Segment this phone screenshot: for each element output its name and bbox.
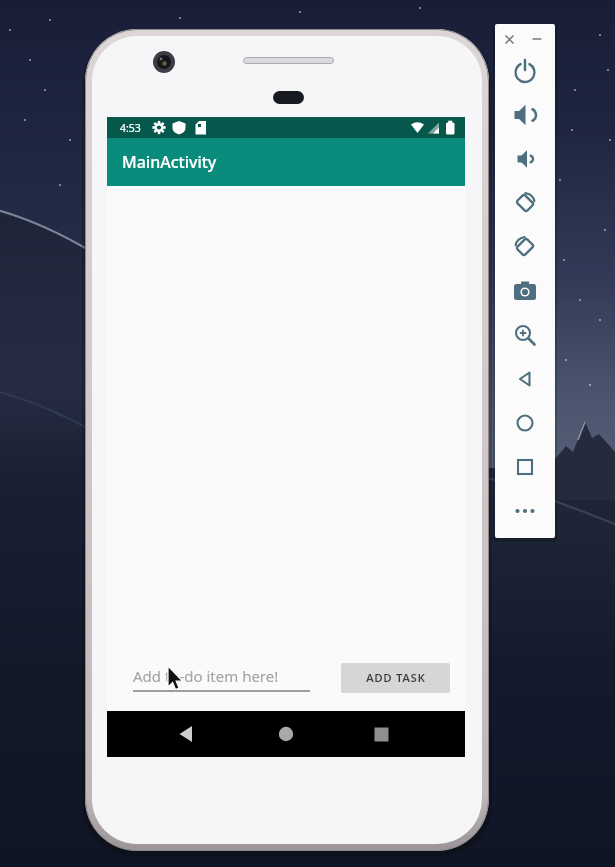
button[interactable]: [499, 29, 519, 49]
button[interactable]: [507, 317, 543, 353]
button[interactable]: [166, 714, 206, 754]
button[interactable]: ADD TASK: [341, 663, 450, 693]
staticText: Add to-do item here!: [133, 666, 279, 686]
button[interactable]: [507, 185, 543, 221]
button[interactable]: [507, 229, 543, 265]
button[interactable]: [507, 54, 543, 90]
button[interactable]: [507, 449, 543, 485]
staticText: MainActivity: [122, 151, 217, 173]
button[interactable]: [507, 141, 543, 177]
button[interactable]: [266, 714, 306, 754]
button[interactable]: [507, 97, 543, 133]
button[interactable]: [507, 493, 543, 529]
button[interactable]: [507, 361, 543, 397]
button[interactable]: [507, 405, 543, 441]
button[interactable]: [507, 273, 543, 309]
button[interactable]: [527, 29, 547, 49]
button[interactable]: [361, 714, 401, 754]
staticText: 4:53: [120, 121, 141, 135]
button[interactable]: Add to-do item here!: [131, 660, 312, 696]
staticText: ADD TASK: [366, 670, 426, 686]
